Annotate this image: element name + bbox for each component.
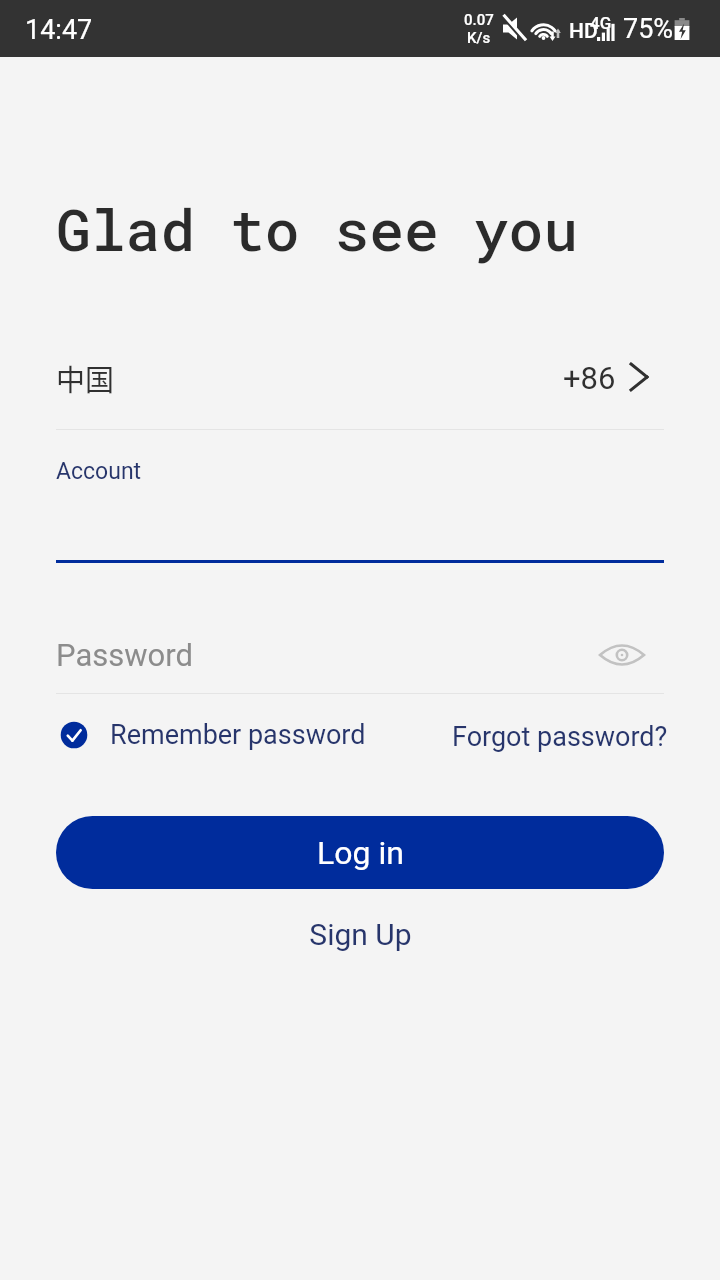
- staticText: Log in: [317, 834, 404, 872]
- button[interactable]: Log in: [56, 816, 664, 889]
- staticText: K/s: [467, 29, 491, 47]
- button[interactable]: Password: [56, 620, 664, 694]
- button[interactable]: Show password: [596, 633, 648, 677]
- staticText: Remember password: [110, 719, 366, 751]
- staticText: 14:47: [25, 14, 93, 46]
- staticText: +86: [563, 360, 616, 396]
- button[interactable]: Sign Up: [285, 909, 436, 960]
- button[interactable]: Remember password: [58, 713, 366, 757]
- button[interactable]: Forgot password?: [452, 721, 668, 753]
- staticText: HD: [569, 19, 598, 44]
- staticText: 75%: [623, 13, 674, 45]
- staticText: 4G: [590, 13, 612, 33]
- button[interactable]: 中国: [0, 348, 720, 410]
- staticText: 0.07: [464, 11, 494, 29]
- staticText: Glad to see you: [56, 190, 579, 266]
- staticText: 中国: [56, 357, 115, 399]
- staticText: Account: [56, 458, 142, 485]
- staticText: Password: [56, 637, 193, 673]
- button[interactable]: Account: [56, 440, 664, 564]
